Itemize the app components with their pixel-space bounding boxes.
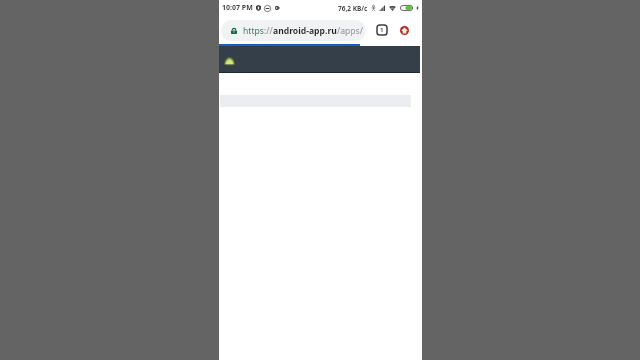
button[interactable]: https — [221, 20, 366, 41]
button[interactable]: Android logo — [224, 57, 235, 65]
staticText: android-app.ru — [273, 25, 337, 37]
staticText: /apps/a — [337, 25, 363, 37]
staticText: 10:07 PM — [222, 3, 253, 13]
button[interactable]: Home — [400, 26, 409, 35]
staticText: https — [243, 25, 264, 37]
button[interactable]: Open tabs — [377, 25, 387, 35]
staticText: :// — [264, 25, 273, 37]
staticText: 76,2 KB/c — [338, 4, 368, 13]
staticText: 1 — [380, 26, 384, 34]
